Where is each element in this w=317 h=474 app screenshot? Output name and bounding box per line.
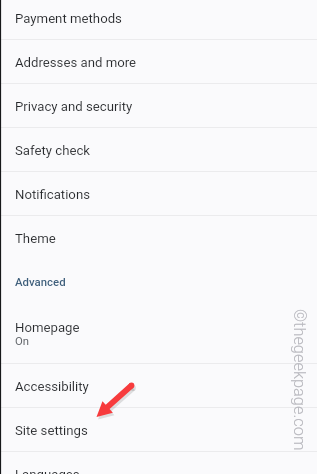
staticText: Site settings (15, 423, 88, 438)
button[interactable]: Homepage (0, 303, 317, 363)
staticText: Theme (15, 231, 56, 246)
button[interactable]: Site settings (0, 407, 317, 451)
staticText: Languages (15, 467, 80, 474)
staticText: On (15, 335, 30, 348)
staticText: Notifications (15, 187, 90, 202)
staticText: ©thegeekpage.com (291, 309, 309, 451)
button[interactable]: Notifications (0, 171, 317, 215)
button[interactable]: Privacy and security (0, 83, 317, 127)
button[interactable]: Addresses and more (0, 39, 317, 83)
button[interactable]: Advanced (0, 259, 317, 303)
staticText: Safety check (15, 143, 90, 158)
button[interactable]: Languages (0, 451, 317, 474)
staticText: Accessibility (15, 379, 89, 394)
staticText: Addresses and more (15, 55, 137, 70)
staticText: Payment methods (15, 11, 122, 26)
button[interactable]: Safety check (0, 127, 317, 171)
button[interactable]: Theme (0, 215, 317, 259)
staticText: Privacy and security (15, 99, 133, 114)
staticText: Homepage (15, 320, 80, 335)
button[interactable]: Accessibility (0, 363, 317, 407)
other: Annotation arrow pointing to Site settin… (0, 0, 317, 474)
button[interactable]: Payment methods (0, 0, 317, 39)
staticText: Advanced (15, 275, 66, 288)
